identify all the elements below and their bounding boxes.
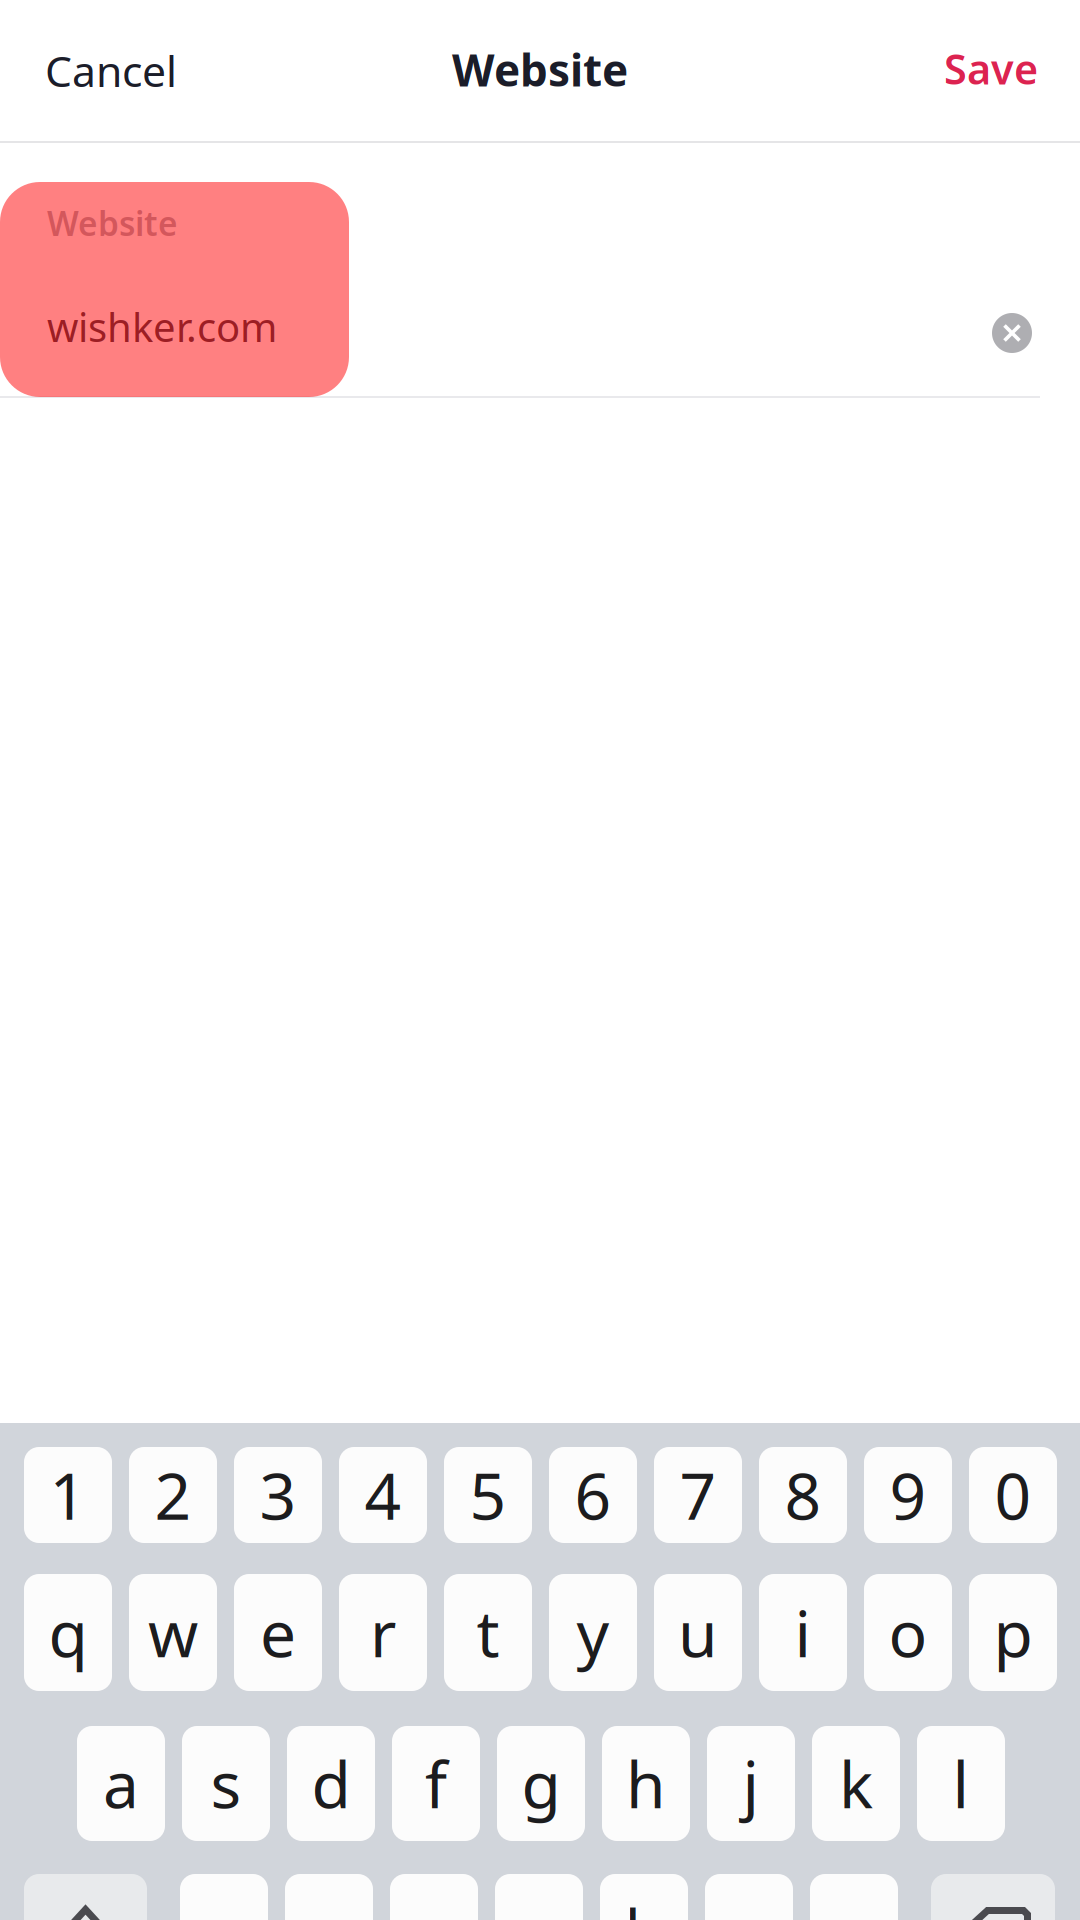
- button[interactable]: 4: [339, 1447, 427, 1543]
- staticText: s: [210, 1741, 241, 1826]
- button[interactable]: x: [285, 1874, 373, 1920]
- button[interactable]: l: [917, 1726, 1005, 1841]
- staticText: t: [476, 1590, 499, 1675]
- button[interactable]: s: [182, 1726, 270, 1841]
- button[interactable]: o: [864, 1574, 952, 1691]
- button[interactable]: i: [759, 1574, 847, 1691]
- staticText: 2: [154, 1452, 191, 1537]
- staticText: 9: [889, 1452, 926, 1537]
- staticText: e: [260, 1590, 296, 1675]
- button[interactable]: d: [287, 1726, 375, 1841]
- staticText: g: [521, 1741, 560, 1826]
- staticText: i: [794, 1590, 811, 1675]
- button[interactable]: p: [969, 1574, 1057, 1691]
- button[interactable]: c: [390, 1874, 478, 1920]
- button[interactable]: f: [392, 1726, 480, 1841]
- staticText: r: [370, 1590, 396, 1675]
- staticText: o: [888, 1590, 927, 1675]
- button[interactable]: Shift: [24, 1874, 147, 1920]
- staticText: Website: [47, 201, 178, 245]
- staticText: 8: [784, 1452, 821, 1537]
- button[interactable]: u: [654, 1574, 742, 1691]
- button[interactable]: j: [707, 1726, 795, 1841]
- button[interactable]: h: [602, 1726, 690, 1841]
- staticText: j: [742, 1741, 759, 1826]
- staticText: 6: [574, 1452, 611, 1537]
- button[interactable]: r: [339, 1574, 427, 1691]
- button[interactable]: t: [444, 1574, 532, 1691]
- staticText: Cancel: [45, 42, 177, 99]
- button[interactable]: 6: [549, 1447, 637, 1543]
- staticText: k: [839, 1741, 873, 1826]
- button[interactable]: g: [497, 1726, 585, 1841]
- button[interactable]: Cancel: [0, 18, 201, 123]
- staticText: 1: [49, 1452, 86, 1537]
- button[interactable]: Save: [920, 19, 1080, 122]
- button[interactable]: y: [549, 1574, 637, 1691]
- staticText: Website: [452, 40, 628, 99]
- staticText: Save: [944, 41, 1038, 96]
- staticText: u: [678, 1590, 718, 1675]
- staticText: wishker.com: [47, 300, 277, 353]
- button[interactable]: 7: [654, 1447, 742, 1543]
- button[interactable]: k: [812, 1726, 900, 1841]
- button[interactable]: w: [129, 1574, 217, 1691]
- button[interactable]: 9: [864, 1447, 952, 1543]
- button[interactable]: 3: [234, 1447, 322, 1543]
- staticText: h: [626, 1741, 666, 1826]
- button[interactable]: q: [24, 1574, 112, 1691]
- button[interactable]: Delete: [931, 1874, 1055, 1920]
- staticText: 4: [364, 1452, 401, 1537]
- staticText: a: [103, 1741, 139, 1826]
- button[interactable]: b: [600, 1874, 688, 1920]
- staticText: 5: [469, 1452, 506, 1537]
- button[interactable]: 8: [759, 1447, 847, 1543]
- staticText: y: [576, 1590, 609, 1675]
- button[interactable]: 1: [24, 1447, 112, 1543]
- button[interactable]: n: [705, 1874, 793, 1920]
- staticText: l: [952, 1741, 969, 1826]
- button[interactable]: a: [77, 1726, 165, 1841]
- staticText: 7: [679, 1452, 716, 1537]
- button[interactable]: 2: [129, 1447, 217, 1543]
- staticText: d: [311, 1741, 350, 1826]
- staticText: p: [993, 1590, 1032, 1675]
- staticText: 0: [994, 1452, 1031, 1537]
- staticText: b: [624, 1889, 663, 1920]
- staticText: w: [148, 1590, 198, 1675]
- button[interactable]: 5: [444, 1447, 532, 1543]
- button[interactable]: 0: [969, 1447, 1057, 1543]
- button[interactable]: e: [234, 1574, 322, 1691]
- staticText: f: [425, 1741, 447, 1826]
- button[interactable]: Clear text: [979, 300, 1045, 366]
- button[interactable]: z: [180, 1874, 268, 1920]
- button[interactable]: m: [810, 1874, 898, 1920]
- staticText: q: [48, 1590, 87, 1675]
- button[interactable]: v: [495, 1874, 583, 1920]
- staticText: 3: [259, 1452, 296, 1537]
